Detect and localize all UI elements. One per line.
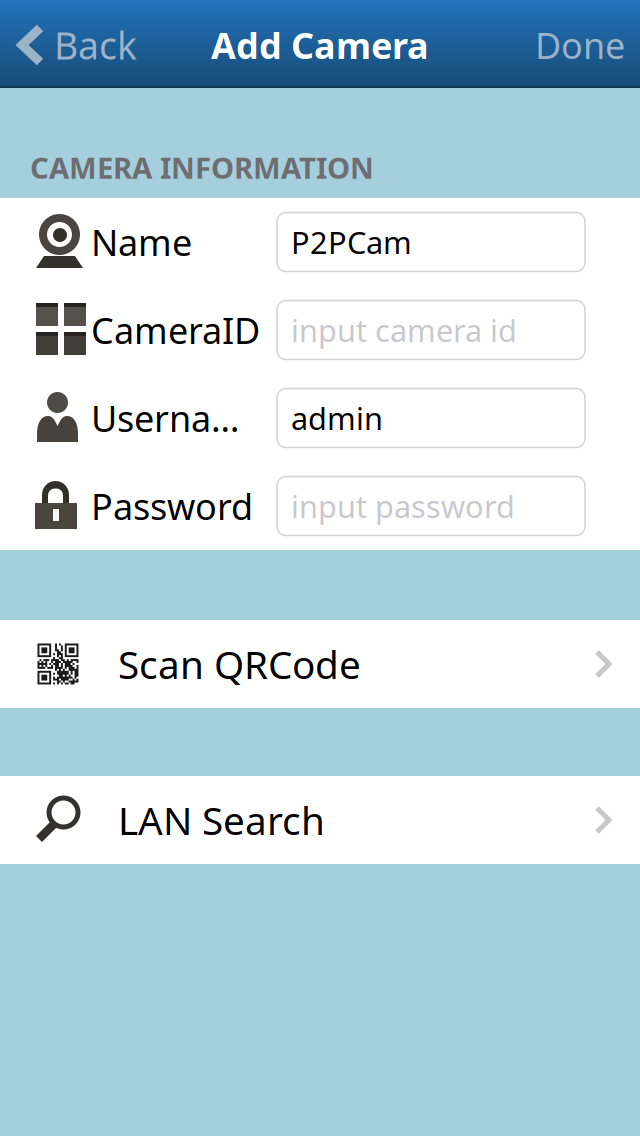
button[interactable]: Scan QRCode: [0, 620, 640, 708]
staticText: Scan QRCode: [118, 638, 361, 690]
staticText: CameraID: [91, 306, 260, 354]
staticText: Back: [54, 20, 137, 70]
button[interactable]: LAN Search: [0, 776, 640, 864]
staticText: input camera id: [291, 310, 517, 350]
staticText: Password: [91, 482, 253, 530]
staticText: Add Camera: [211, 21, 429, 69]
staticText: P2PCam: [291, 222, 412, 262]
staticText: Name: [91, 218, 192, 266]
staticText: Done: [535, 21, 625, 69]
button[interactable]: Done: [517, 2, 640, 88]
button[interactable]: Userna…: [277, 388, 585, 447]
button[interactable]: Password: [277, 476, 585, 535]
button[interactable]: CameraID: [277, 300, 585, 359]
staticText: LAN Search: [118, 794, 325, 846]
staticText: admin: [291, 398, 383, 438]
staticText: Userna…: [91, 394, 239, 442]
button[interactable]: Name: [277, 212, 585, 271]
button[interactable]: Back: [0, 2, 151, 88]
staticText: input password: [291, 486, 515, 526]
staticText: CAMERA INFORMATION: [30, 148, 374, 187]
